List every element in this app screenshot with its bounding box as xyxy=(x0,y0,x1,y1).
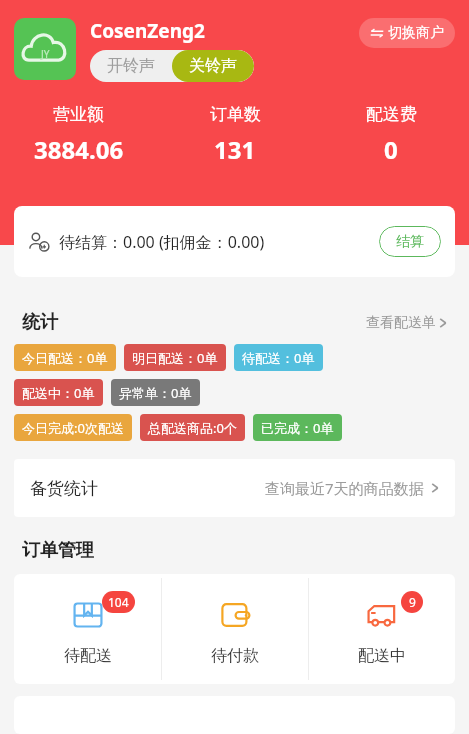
staticText: 营业额 xyxy=(53,104,104,125)
staticText: 配送费 xyxy=(366,104,417,125)
button[interactable]: 待结算：0.00 (扣佣金：0.00) xyxy=(14,206,455,277)
button[interactable]: 待配送：0单 xyxy=(234,344,323,371)
button[interactable]: 总配送商品:0个 xyxy=(140,414,245,441)
button[interactable]: 异常单：0单 xyxy=(111,379,200,406)
button[interactable]: 9 xyxy=(309,574,455,684)
button[interactable]: 统计 xyxy=(22,311,447,334)
button[interactable]: 开铃声 xyxy=(90,50,172,82)
staticText: 配送中 xyxy=(358,646,406,666)
staticText: 待配送：0单 xyxy=(242,349,315,367)
staticText: 今日完成:0次配送 xyxy=(22,419,124,437)
staticText: 131 xyxy=(214,133,256,166)
staticText: 关铃声 xyxy=(189,56,237,76)
button[interactable]: 备货统计 xyxy=(14,459,455,517)
staticText: CosenZeng2 xyxy=(90,18,205,44)
staticText: 0 xyxy=(384,133,398,166)
staticText: 开铃声 xyxy=(107,56,155,76)
staticText: 统计 xyxy=(22,311,58,334)
staticText: 总配送商品:0个 xyxy=(148,419,237,437)
staticText: 结算 xyxy=(396,233,424,251)
staticText: 3884.06 xyxy=(34,133,124,166)
staticText: 切换商户 xyxy=(388,24,444,42)
staticText: 9 xyxy=(409,594,416,610)
button[interactable]: 切换商户 xyxy=(359,18,455,48)
staticText: 订单管理 xyxy=(22,539,94,562)
staticText: 待结算：0.00 (扣佣金：0.00) xyxy=(59,231,265,253)
staticText: 配送中：0单 xyxy=(22,384,95,402)
button[interactable]: 104 xyxy=(14,574,161,684)
staticText: JY xyxy=(41,47,50,61)
button[interactable]: 明日配送：0单 xyxy=(124,344,226,371)
staticText: 查询最近7天的商品数据 xyxy=(265,478,424,498)
staticText: 104 xyxy=(108,594,129,610)
staticText: 异常单：0单 xyxy=(119,384,192,402)
staticText: 明日配送：0单 xyxy=(132,349,218,367)
button[interactable]: 今日配送：0单 xyxy=(14,344,116,371)
button[interactable]: 待付款 xyxy=(162,574,308,684)
button[interactable]: 今日完成:0次配送 xyxy=(14,414,132,441)
staticText: 待付款 xyxy=(211,646,259,666)
staticText: 今日配送：0单 xyxy=(22,349,108,367)
button[interactable]: 关铃声 xyxy=(172,50,254,82)
button[interactable]: 结算 xyxy=(379,226,441,257)
staticText: 已完成：0单 xyxy=(261,419,334,437)
staticText: 备货统计 xyxy=(30,478,98,499)
button[interactable]: 配送中：0单 xyxy=(14,379,103,406)
staticText: 查看配送单 xyxy=(366,314,436,332)
button[interactable]: 已完成：0单 xyxy=(253,414,342,441)
staticText: 待配送 xyxy=(64,646,112,666)
staticText: 订单数 xyxy=(210,104,261,125)
